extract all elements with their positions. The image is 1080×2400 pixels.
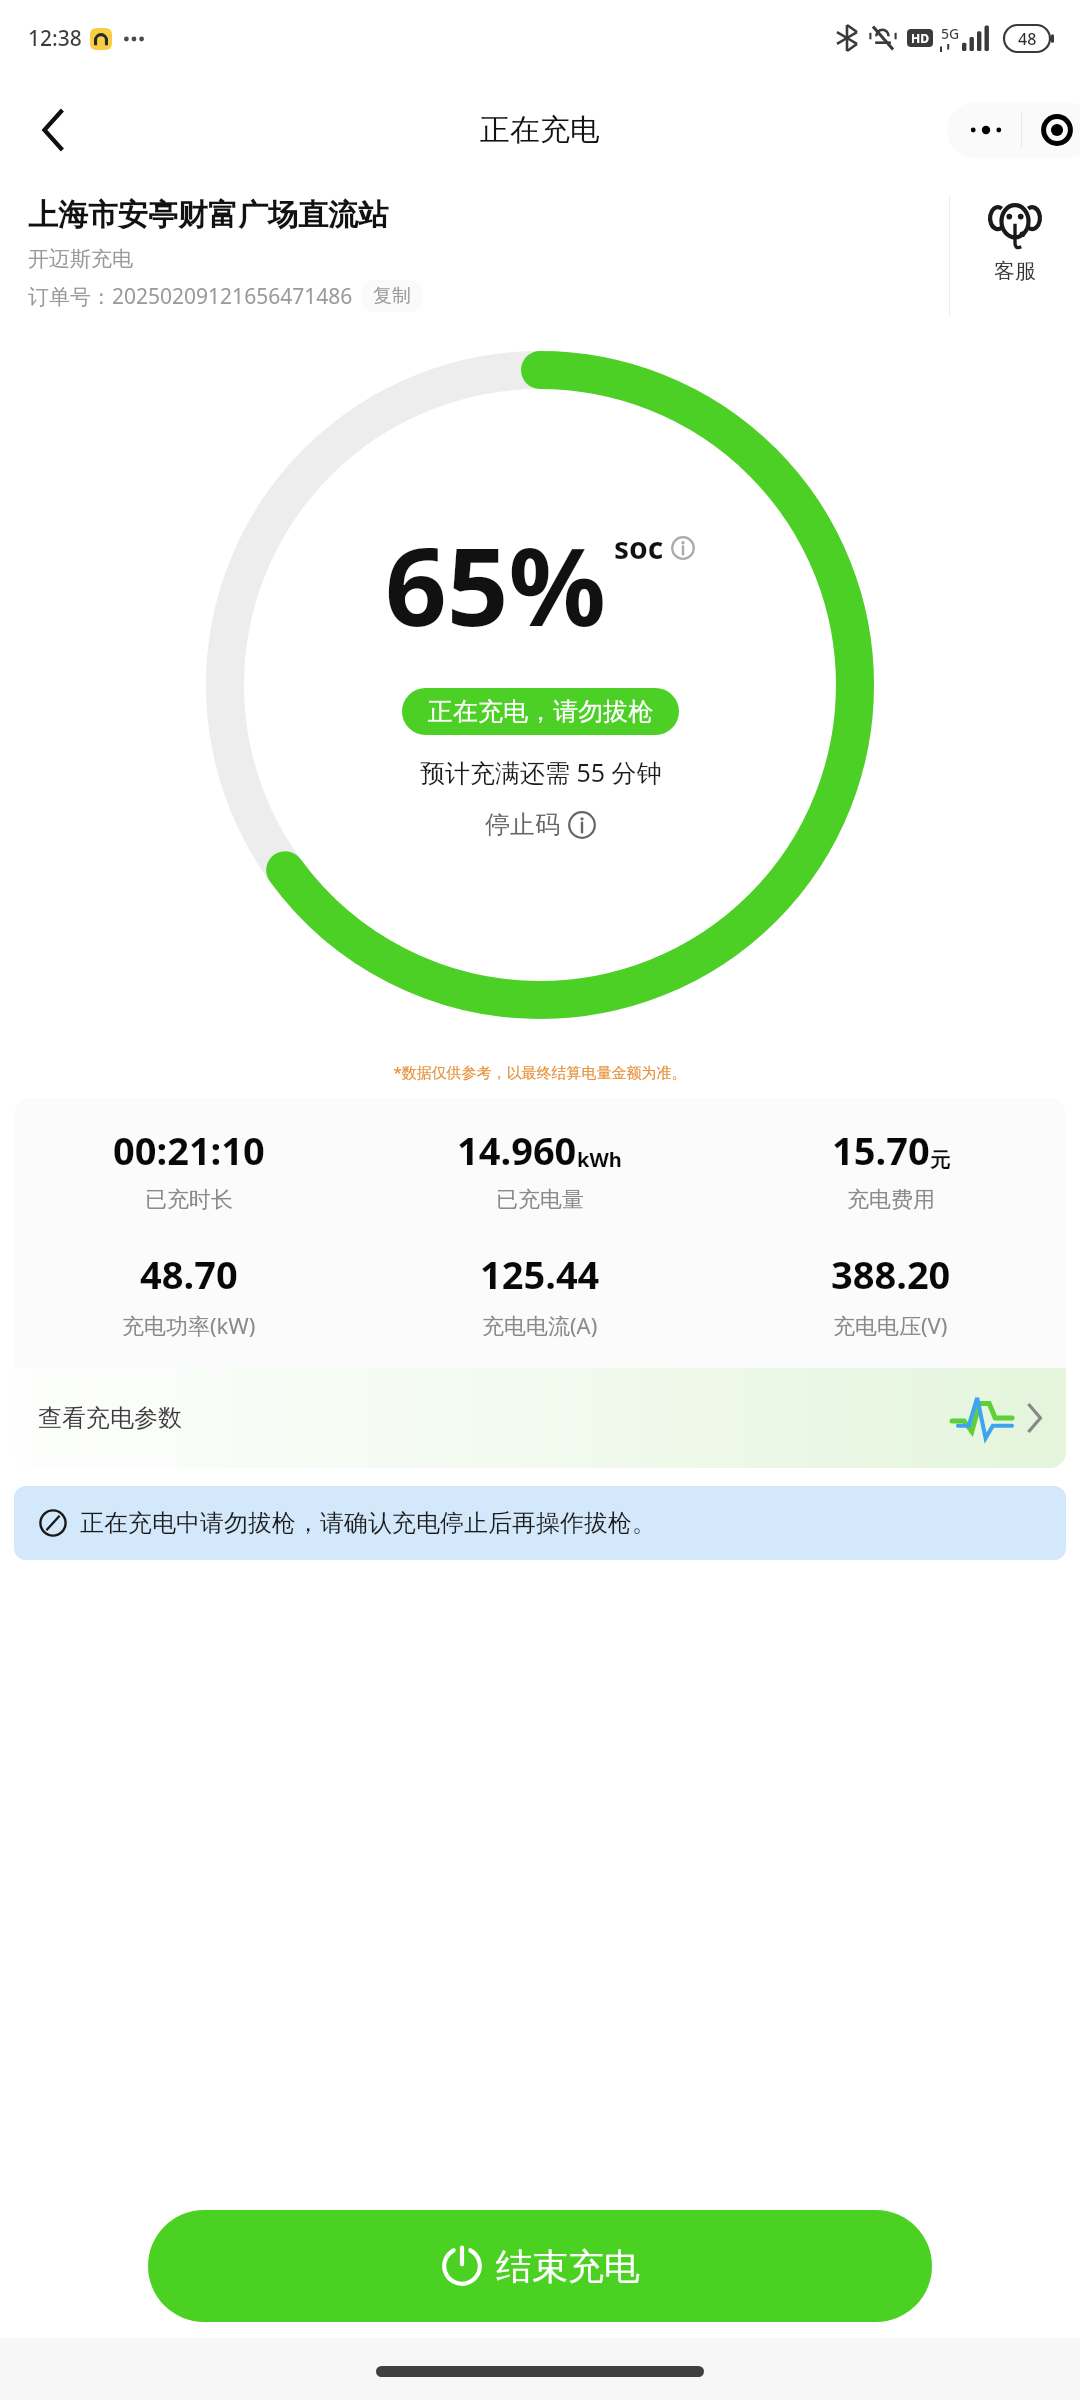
staticText: 开迈斯充电 xyxy=(28,246,133,272)
staticText: 订单号：20250209121656471486 xyxy=(28,282,353,311)
staticText: 已充时长 xyxy=(145,1186,233,1214)
staticText: 48 xyxy=(1018,28,1037,50)
staticText: 充电功率(kW) xyxy=(122,1310,256,1340)
staticText: *数据仅供参考，以最终结算电量金额为准。 xyxy=(0,1062,1080,1082)
button[interactable]: 更多 xyxy=(951,102,1021,158)
staticText: 客服 xyxy=(994,258,1036,284)
button[interactable]: 停止码 xyxy=(485,809,596,840)
staticText: 复制 xyxy=(373,284,411,308)
staticText: 预计充满还需 55 分钟 xyxy=(420,755,662,789)
staticText: 125.44 xyxy=(480,1248,600,1300)
staticText: 48.70 xyxy=(140,1248,238,1300)
staticText: 已充电量 xyxy=(496,1186,584,1214)
staticText: 388.20 xyxy=(831,1248,951,1300)
staticText: 正在充电，请勿拔枪 xyxy=(428,696,653,727)
staticText: 正在充电中请勿拔枪，请确认充电停止后再操作拔枪。 xyxy=(80,1508,656,1538)
staticText: HD xyxy=(911,30,929,46)
staticText: 15.70 xyxy=(832,1124,930,1176)
button[interactable]: 结束充电 xyxy=(148,2210,932,2322)
button[interactable]: 查看充电参数 xyxy=(14,1368,1066,1468)
staticText: 00:21:10 xyxy=(113,1124,265,1176)
staticText: 5G xyxy=(941,24,960,43)
staticText: 结束充电 xyxy=(496,2244,640,2289)
button[interactable]: 关闭 xyxy=(1022,102,1080,158)
button[interactable]: 正在充电，请勿拔枪 xyxy=(402,688,679,735)
staticText: 充电电流(A) xyxy=(482,1310,598,1340)
staticText: 上海市安亭财富广场直流站 xyxy=(28,196,388,234)
staticText: 充电费用 xyxy=(847,1186,935,1214)
staticText: soc xyxy=(614,527,664,568)
staticText: 查看充电参数 xyxy=(38,1403,182,1433)
staticText: 元 xyxy=(930,1148,950,1173)
button[interactable]: 复制 xyxy=(361,280,423,312)
staticText: 停止码 xyxy=(485,809,560,840)
staticText: 12:38 xyxy=(28,24,82,53)
staticText: kWh xyxy=(577,1146,622,1173)
staticText: 65% xyxy=(385,511,606,658)
button[interactable]: 客服 xyxy=(950,196,1080,284)
button[interactable]: SOC 说明 xyxy=(670,535,696,561)
button[interactable]: 返回 xyxy=(26,102,82,158)
staticText: 14.960 xyxy=(457,1124,577,1176)
staticText: 正在充电 xyxy=(480,111,600,149)
staticText: 充电电压(V) xyxy=(833,1310,948,1340)
